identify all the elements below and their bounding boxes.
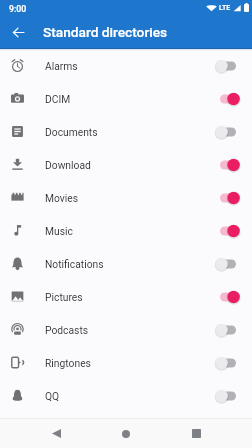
- button[interactable]: Ringtones: [0, 346, 252, 379]
- button[interactable]: Back: [3, 17, 33, 47]
- button[interactable]: Music: [0, 214, 252, 247]
- staticText: Ringtones: [45, 357, 91, 369]
- button[interactable]: Notifications: [0, 247, 252, 280]
- staticText: Alarms: [45, 60, 78, 72]
- staticText: Movies: [45, 192, 79, 204]
- staticText: LTE: [219, 4, 231, 12]
- staticText: Documents: [45, 126, 98, 138]
- staticText: Download: [45, 159, 91, 171]
- button[interactable]: QQ: [0, 379, 252, 412]
- button[interactable]: Pictures: [0, 280, 252, 313]
- button[interactable]: Back: [42, 419, 70, 448]
- button[interactable]: Podcasts: [0, 313, 252, 346]
- button[interactable]: Alarms: [0, 49, 252, 82]
- staticText: Standard directories: [43, 24, 168, 40]
- staticText: Pictures: [45, 291, 83, 303]
- button[interactable]: Documents: [0, 115, 252, 148]
- button[interactable]: Download: [0, 148, 252, 181]
- button[interactable]: Home: [112, 419, 140, 448]
- staticText: DCIM: [45, 93, 71, 105]
- staticText: 9:00: [9, 4, 27, 14]
- staticText: QQ: [45, 390, 60, 402]
- staticText: Podcasts: [45, 324, 89, 336]
- button[interactable]: Movies: [0, 181, 252, 214]
- button[interactable]: DCIM: [0, 82, 252, 115]
- staticText: Music: [45, 225, 73, 237]
- staticText: Notifications: [45, 258, 104, 270]
- button[interactable]: Recents: [182, 419, 210, 448]
